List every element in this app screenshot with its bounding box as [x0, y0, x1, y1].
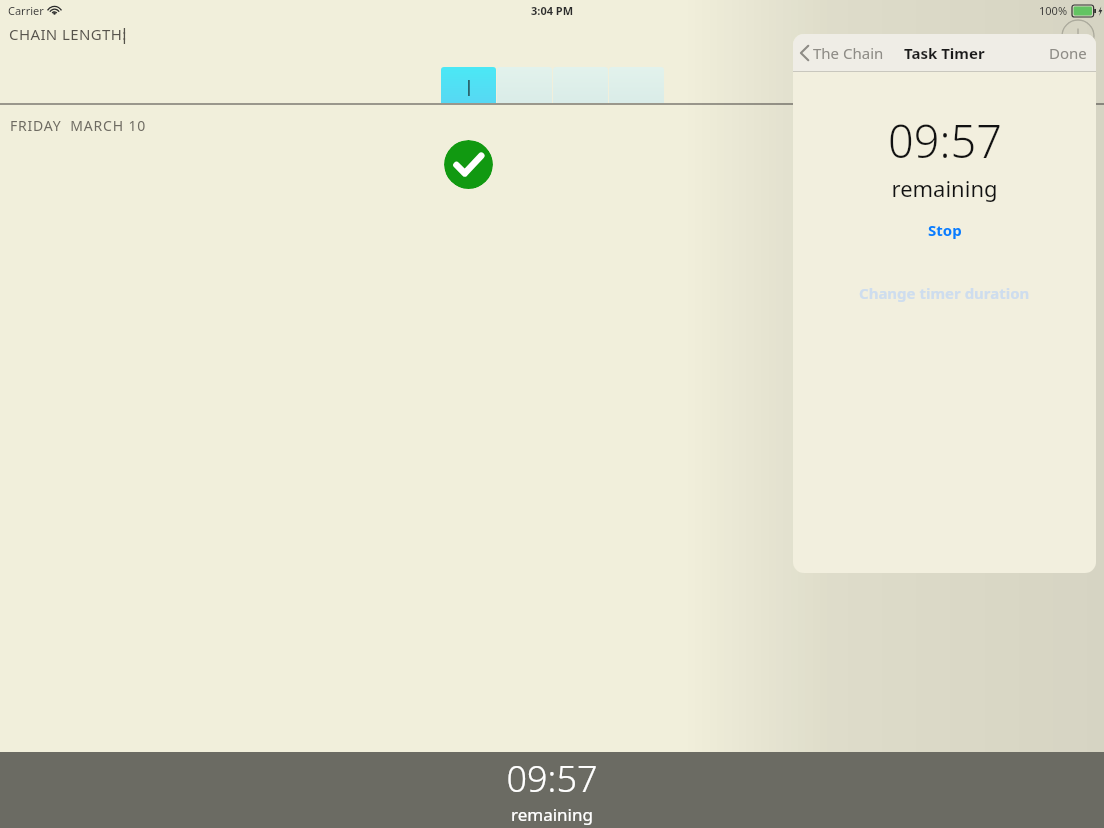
button[interactable]: Empty chain link — [497, 67, 552, 138]
staticText: 100% — [1039, 3, 1068, 18]
staticText: | — [120, 23, 129, 45]
button[interactable]: Change timer duration — [843, 277, 1046, 309]
button[interactable]: Timer — [1061, 19, 1095, 53]
staticText: .NET — [457, 104, 481, 119]
staticText: Carrier — [8, 3, 44, 18]
button[interactable]: Chain link .NET — [441, 67, 496, 138]
staticText: 09:57 — [506, 754, 598, 803]
button[interactable]: Task completed — [444, 140, 493, 189]
staticText: Done — [1049, 43, 1087, 63]
staticText: The Chain — [813, 43, 884, 63]
staticText: Change timer duration — [859, 283, 1030, 303]
staticText: CHAIN LENGTH: — [9, 24, 127, 44]
button[interactable]: 09:57 — [0, 752, 1104, 828]
staticText: 09:57 — [888, 110, 1002, 171]
button[interactable]: The Chain — [793, 39, 892, 67]
button[interactable]: Stop — [906, 214, 984, 246]
staticText: remaining — [511, 803, 593, 826]
staticText: Stop — [928, 220, 962, 240]
staticText: | — [464, 74, 474, 97]
button[interactable]: Empty chain link — [553, 67, 608, 138]
staticText: FRIDAY MARCH 10 — [10, 116, 146, 135]
button[interactable]: Empty chain link — [609, 67, 664, 138]
staticText: Task Timer — [904, 43, 985, 63]
button[interactable]: Done — [1040, 37, 1096, 69]
staticText: remaining — [891, 173, 998, 203]
staticText: 3:04 PM — [531, 3, 574, 18]
